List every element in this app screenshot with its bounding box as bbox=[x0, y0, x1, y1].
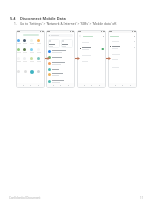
staticText: 5.4 bbox=[10, 16, 16, 21]
button[interactable]: Search settings bbox=[49, 34, 72, 37]
button[interactable] bbox=[49, 40, 59, 47]
button[interactable]: App bbox=[29, 48, 34, 53]
staticText: 11 bbox=[140, 196, 144, 200]
button[interactable]: App bbox=[16, 57, 21, 62]
button[interactable] bbox=[48, 55, 73, 60]
button[interactable]: App bbox=[17, 70, 20, 73]
button[interactable] bbox=[62, 40, 72, 47]
button[interactable]: App bbox=[36, 57, 41, 62]
button[interactable] bbox=[48, 49, 73, 54]
button[interactable] bbox=[112, 57, 135, 61]
button[interactable] bbox=[82, 40, 104, 45]
button[interactable]: App bbox=[36, 39, 41, 44]
button[interactable] bbox=[48, 67, 73, 72]
button[interactable]: App bbox=[16, 48, 21, 53]
button[interactable]: App bbox=[24, 70, 27, 73]
button[interactable]: App bbox=[37, 70, 40, 73]
button[interactable] bbox=[82, 59, 104, 64]
button[interactable] bbox=[82, 53, 104, 58]
button[interactable] bbox=[112, 52, 135, 56]
button[interactable]: App bbox=[22, 57, 27, 62]
button[interactable]: App bbox=[29, 57, 34, 62]
button[interactable] bbox=[112, 65, 135, 69]
button[interactable] bbox=[112, 39, 135, 43]
staticText: Disconnect Mobile Data bbox=[20, 16, 66, 21]
button[interactable]: App bbox=[22, 48, 27, 53]
button[interactable]: Mobile data toggle bbox=[82, 46, 104, 51]
button[interactable]: App bbox=[29, 39, 34, 44]
button[interactable]: Mobile data toggle bbox=[101, 48, 104, 50]
button[interactable] bbox=[48, 61, 73, 66]
button[interactable] bbox=[112, 45, 135, 49]
button[interactable]: App bbox=[30, 70, 34, 74]
button[interactable]: App bbox=[36, 48, 41, 53]
staticText: 1. bbox=[14, 22, 17, 26]
staticText: Confidential Document bbox=[9, 196, 41, 200]
button[interactable] bbox=[48, 79, 73, 84]
button[interactable]: App bbox=[22, 39, 27, 44]
button[interactable]: App bbox=[16, 39, 21, 44]
staticText: Go to 'Settings' > 'Network & Internet' … bbox=[20, 22, 118, 26]
button[interactable] bbox=[48, 72, 73, 77]
